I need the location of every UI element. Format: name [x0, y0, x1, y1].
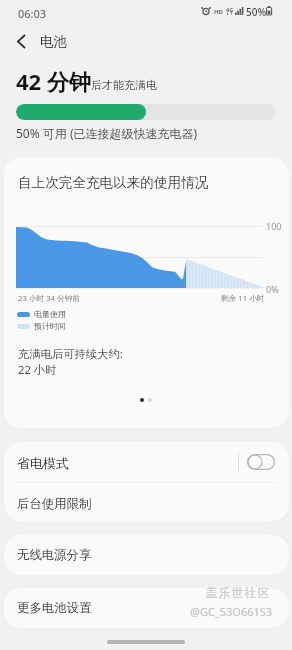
staticText: 电量使用: [34, 309, 66, 319]
staticText: 23 小时 34 分钟前: [18, 293, 81, 304]
staticText: 22 小时: [18, 362, 57, 377]
staticText: 50% 可用 (已连接超级快速充电器): [16, 125, 198, 141]
staticText: 剩余 11 小时: [221, 293, 265, 304]
button[interactable]: 更多电池设置: [4, 588, 289, 628]
staticText: 42 分钟: [16, 66, 91, 96]
staticText: 后才能充满电: [91, 78, 157, 92]
staticText: ↓↑: [226, 11, 234, 16]
staticText: 更多电池设置: [17, 600, 92, 616]
staticText: 4G: [226, 6, 234, 13]
button[interactable]: 省电模式 开关: [247, 454, 275, 470]
staticText: 无线电源分享: [17, 547, 92, 563]
staticText: 盖乐世社区: [205, 585, 270, 600]
button[interactable]: 省电模式: [4, 442, 289, 482]
staticText: 自上次完全充电以来的使用情况: [18, 174, 209, 191]
button[interactable]: 后台使用限制: [4, 482, 289, 521]
staticText: 电池: [40, 33, 67, 50]
staticText: HD: [214, 8, 223, 16]
staticText: @GC_53O661S3: [190, 604, 273, 619]
staticText: 预计时间: [34, 321, 66, 331]
staticText: 100: [266, 220, 282, 232]
staticText: 06:03: [18, 6, 47, 21]
staticText: 充满电后可持续大约:: [18, 346, 123, 361]
staticText: 0%: [266, 283, 279, 295]
staticText: 50%: [246, 5, 266, 19]
staticText: 省电模式: [17, 455, 69, 471]
button[interactable]: 无线电源分享: [4, 535, 289, 575]
button[interactable]: Back: [6, 26, 36, 56]
staticText: 后台使用限制: [17, 496, 92, 512]
